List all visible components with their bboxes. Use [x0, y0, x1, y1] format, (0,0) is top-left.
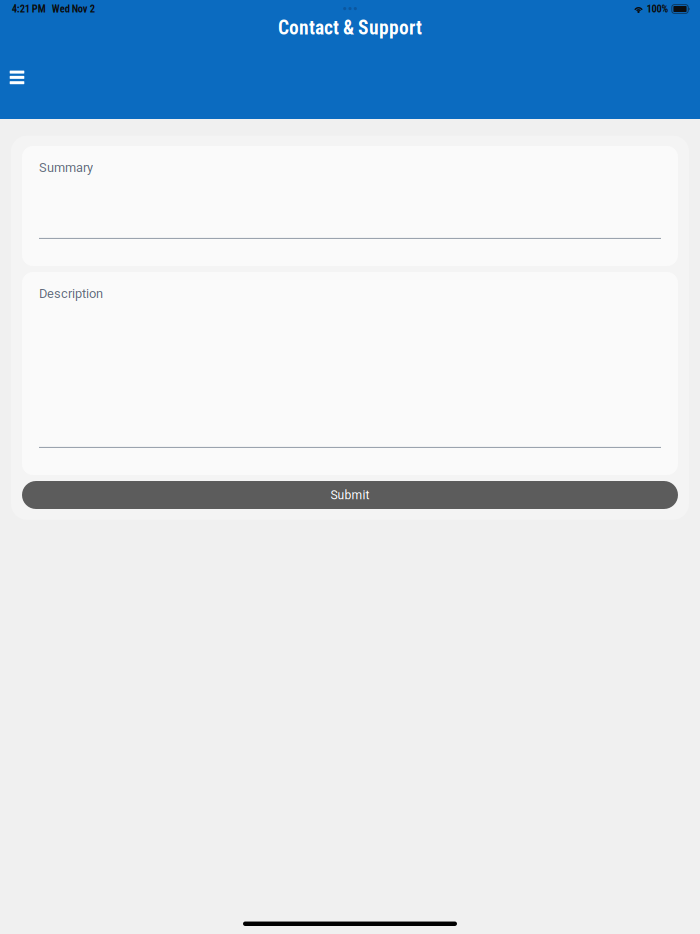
staticText: 4:21 PM [12, 3, 46, 15]
staticText: 100% [647, 3, 669, 15]
staticText: Wed Nov 2 [52, 3, 95, 15]
button[interactable]: Submit [22, 481, 678, 509]
staticText: Description [39, 286, 103, 301]
staticText: Summary [39, 160, 93, 175]
staticText: Contact & Support [278, 16, 422, 39]
button[interactable]: Menu [0, 62, 34, 92]
staticText: Submit [330, 488, 369, 502]
